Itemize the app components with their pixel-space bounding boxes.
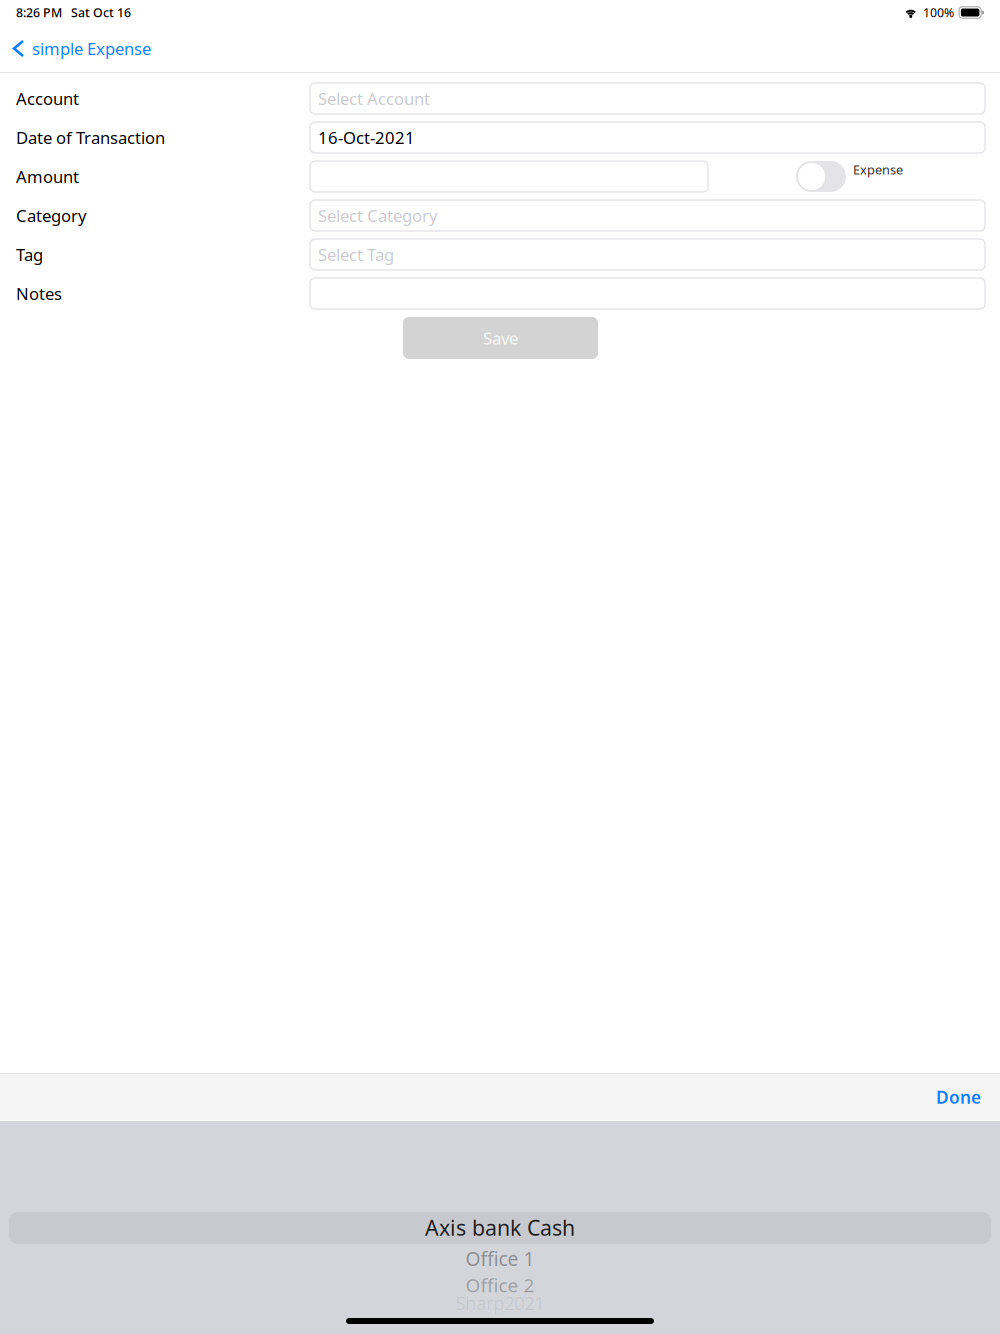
- staticText: Account: [16, 87, 79, 110]
- staticText: Sat Oct 16: [71, 4, 131, 21]
- button[interactable]: Tag: [310, 239, 985, 270]
- staticText: Done: [936, 1085, 981, 1109]
- staticText: Expense: [853, 161, 903, 178]
- staticText: Select Account: [318, 87, 430, 110]
- staticText: 16-Oct-2021: [318, 126, 415, 149]
- button[interactable]: Notes: [310, 278, 985, 309]
- staticText: 100%: [923, 4, 954, 21]
- staticText: 8:26 PM: [16, 4, 62, 21]
- staticText: Select Tag: [318, 243, 394, 266]
- button[interactable]: Category: [310, 200, 985, 231]
- staticText: Date of Transaction: [16, 126, 165, 149]
- staticText: Sharp2021: [455, 1291, 544, 1315]
- staticText: Amount: [16, 165, 79, 188]
- staticText: Office 1: [465, 1245, 534, 1272]
- button[interactable]: Date of Transaction: [310, 122, 985, 153]
- staticText: Tag: [16, 243, 43, 266]
- button[interactable]: Account: [310, 83, 985, 114]
- button[interactable]: Expense toggle: [796, 161, 846, 192]
- button[interactable]: Save: [403, 317, 598, 359]
- button[interactable]: Done: [920, 1074, 1000, 1120]
- staticText: Save: [483, 327, 518, 349]
- staticText: Select Category: [318, 204, 437, 227]
- staticText: Axis bank Cash: [425, 1213, 575, 1242]
- staticText: Notes: [16, 282, 62, 305]
- staticText: Office 2: [465, 1272, 534, 1298]
- staticText: simple Expense: [32, 37, 151, 60]
- staticText: Category: [16, 204, 86, 227]
- button[interactable]: Amount: [310, 161, 708, 192]
- button[interactable]: simple Expense: [0, 25, 161, 72]
